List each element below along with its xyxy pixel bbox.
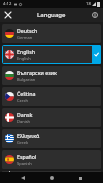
button[interactable]: English (2, 45, 101, 64)
staticText: Language (37, 11, 66, 19)
staticText: Čeština (17, 90, 36, 97)
staticText: English (17, 48, 35, 55)
button[interactable]: Italiano (2, 171, 101, 172)
staticText: Bulgarian (17, 77, 36, 82)
staticText: Czech (17, 98, 29, 103)
staticText: Български език (17, 69, 57, 76)
button[interactable]: Čeština (2, 87, 101, 106)
staticText: Greek (17, 140, 29, 145)
button[interactable]: Español (2, 150, 101, 169)
staticText: German (17, 35, 33, 40)
staticText: 4:12 (3, 1, 12, 7)
staticText: Deutsch (17, 27, 38, 34)
staticText: 18 (86, 1, 91, 7)
button[interactable]: Български език (2, 66, 101, 85)
staticText: Danish (17, 119, 31, 124)
button[interactable]: Close (3, 10, 13, 20)
staticText: Ελληνικά (17, 132, 40, 139)
button[interactable]: Back (18, 173, 28, 183)
staticText: Spanish (17, 161, 32, 166)
button[interactable]: Dansk (2, 108, 101, 127)
staticText: Dansk (17, 111, 33, 118)
button[interactable]: Deutsch (2, 24, 101, 43)
button[interactable]: Ελληνικά (2, 129, 101, 148)
staticText: English (17, 56, 31, 61)
button[interactable]: Info (90, 10, 100, 20)
button[interactable]: Recents (75, 173, 85, 183)
staticText: Español (17, 153, 37, 160)
button[interactable]: Home (47, 173, 57, 183)
